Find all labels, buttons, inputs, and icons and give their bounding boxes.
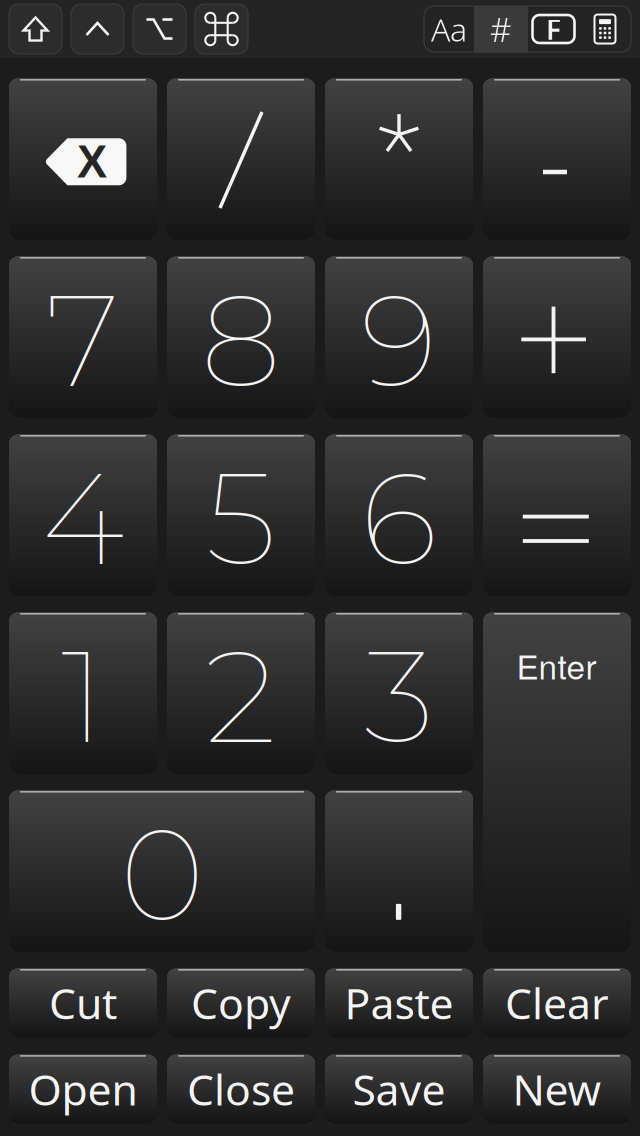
staticText: New [512,1060,601,1117]
staticText: 2 [205,617,277,775]
button[interactable]: 7 [9,256,157,417]
button[interactable]: Copy [167,968,315,1037]
button[interactable]: 6 [325,434,473,595]
button[interactable]: 2 [167,612,315,773]
staticText: 9 [360,261,437,419]
button[interactable]: Equals [483,434,631,595]
staticText: 5 [205,439,276,597]
staticText: Save [352,1060,445,1117]
staticText: 4 [41,439,124,597]
staticText: Cut [49,974,117,1031]
button[interactable]: Keypad [579,6,631,52]
button[interactable]: Open [9,1054,157,1124]
button[interactable]: Option [133,4,186,54]
button[interactable]: F [528,6,579,52]
staticText: Clear [505,974,609,1031]
staticText: 3 [363,617,434,775]
button[interactable]: 1 [9,612,157,773]
button[interactable]: Divide [167,78,315,239]
button[interactable]: Plus [483,256,631,417]
button[interactable]: Multiply [325,78,473,239]
staticText: Enter [516,641,596,689]
staticText: 8 [200,261,281,419]
button[interactable]: 9 [325,256,473,417]
button[interactable]: 3 [325,612,473,773]
staticText: Open [28,1060,137,1117]
button[interactable]: Paste [325,968,473,1037]
button[interactable]: Enter [483,612,631,951]
staticText: # [490,7,512,51]
staticText: Aa [431,8,467,50]
staticText: 0 [120,795,204,953]
button[interactable]: Save [325,1054,473,1124]
button[interactable]: Cut [9,968,157,1037]
staticText: 1 [61,617,105,775]
button[interactable]: New [483,1054,631,1124]
button[interactable]: 0 [9,790,315,951]
button[interactable]: Close [167,1054,315,1124]
staticText: Copy [191,974,291,1031]
staticText: 6 [360,439,437,597]
button[interactable]: 4 [9,434,157,595]
staticText: Close [187,1060,295,1117]
button[interactable]: Clear [483,968,631,1037]
button[interactable]: 8 [167,256,315,417]
button[interactable]: Control [71,4,124,54]
button[interactable]: # [474,6,528,52]
button[interactable]: Comma [325,790,473,951]
button[interactable]: Minus [483,78,631,239]
button[interactable]: Command [195,4,248,54]
staticText: F [546,10,561,48]
button[interactable]: Aa [424,6,474,52]
button[interactable]: Delete [9,78,157,239]
button[interactable]: 5 [167,434,315,595]
staticText: 7 [46,261,120,419]
staticText: X [77,136,107,187]
button[interactable]: Shift [9,4,62,54]
staticText: Paste [344,974,453,1031]
